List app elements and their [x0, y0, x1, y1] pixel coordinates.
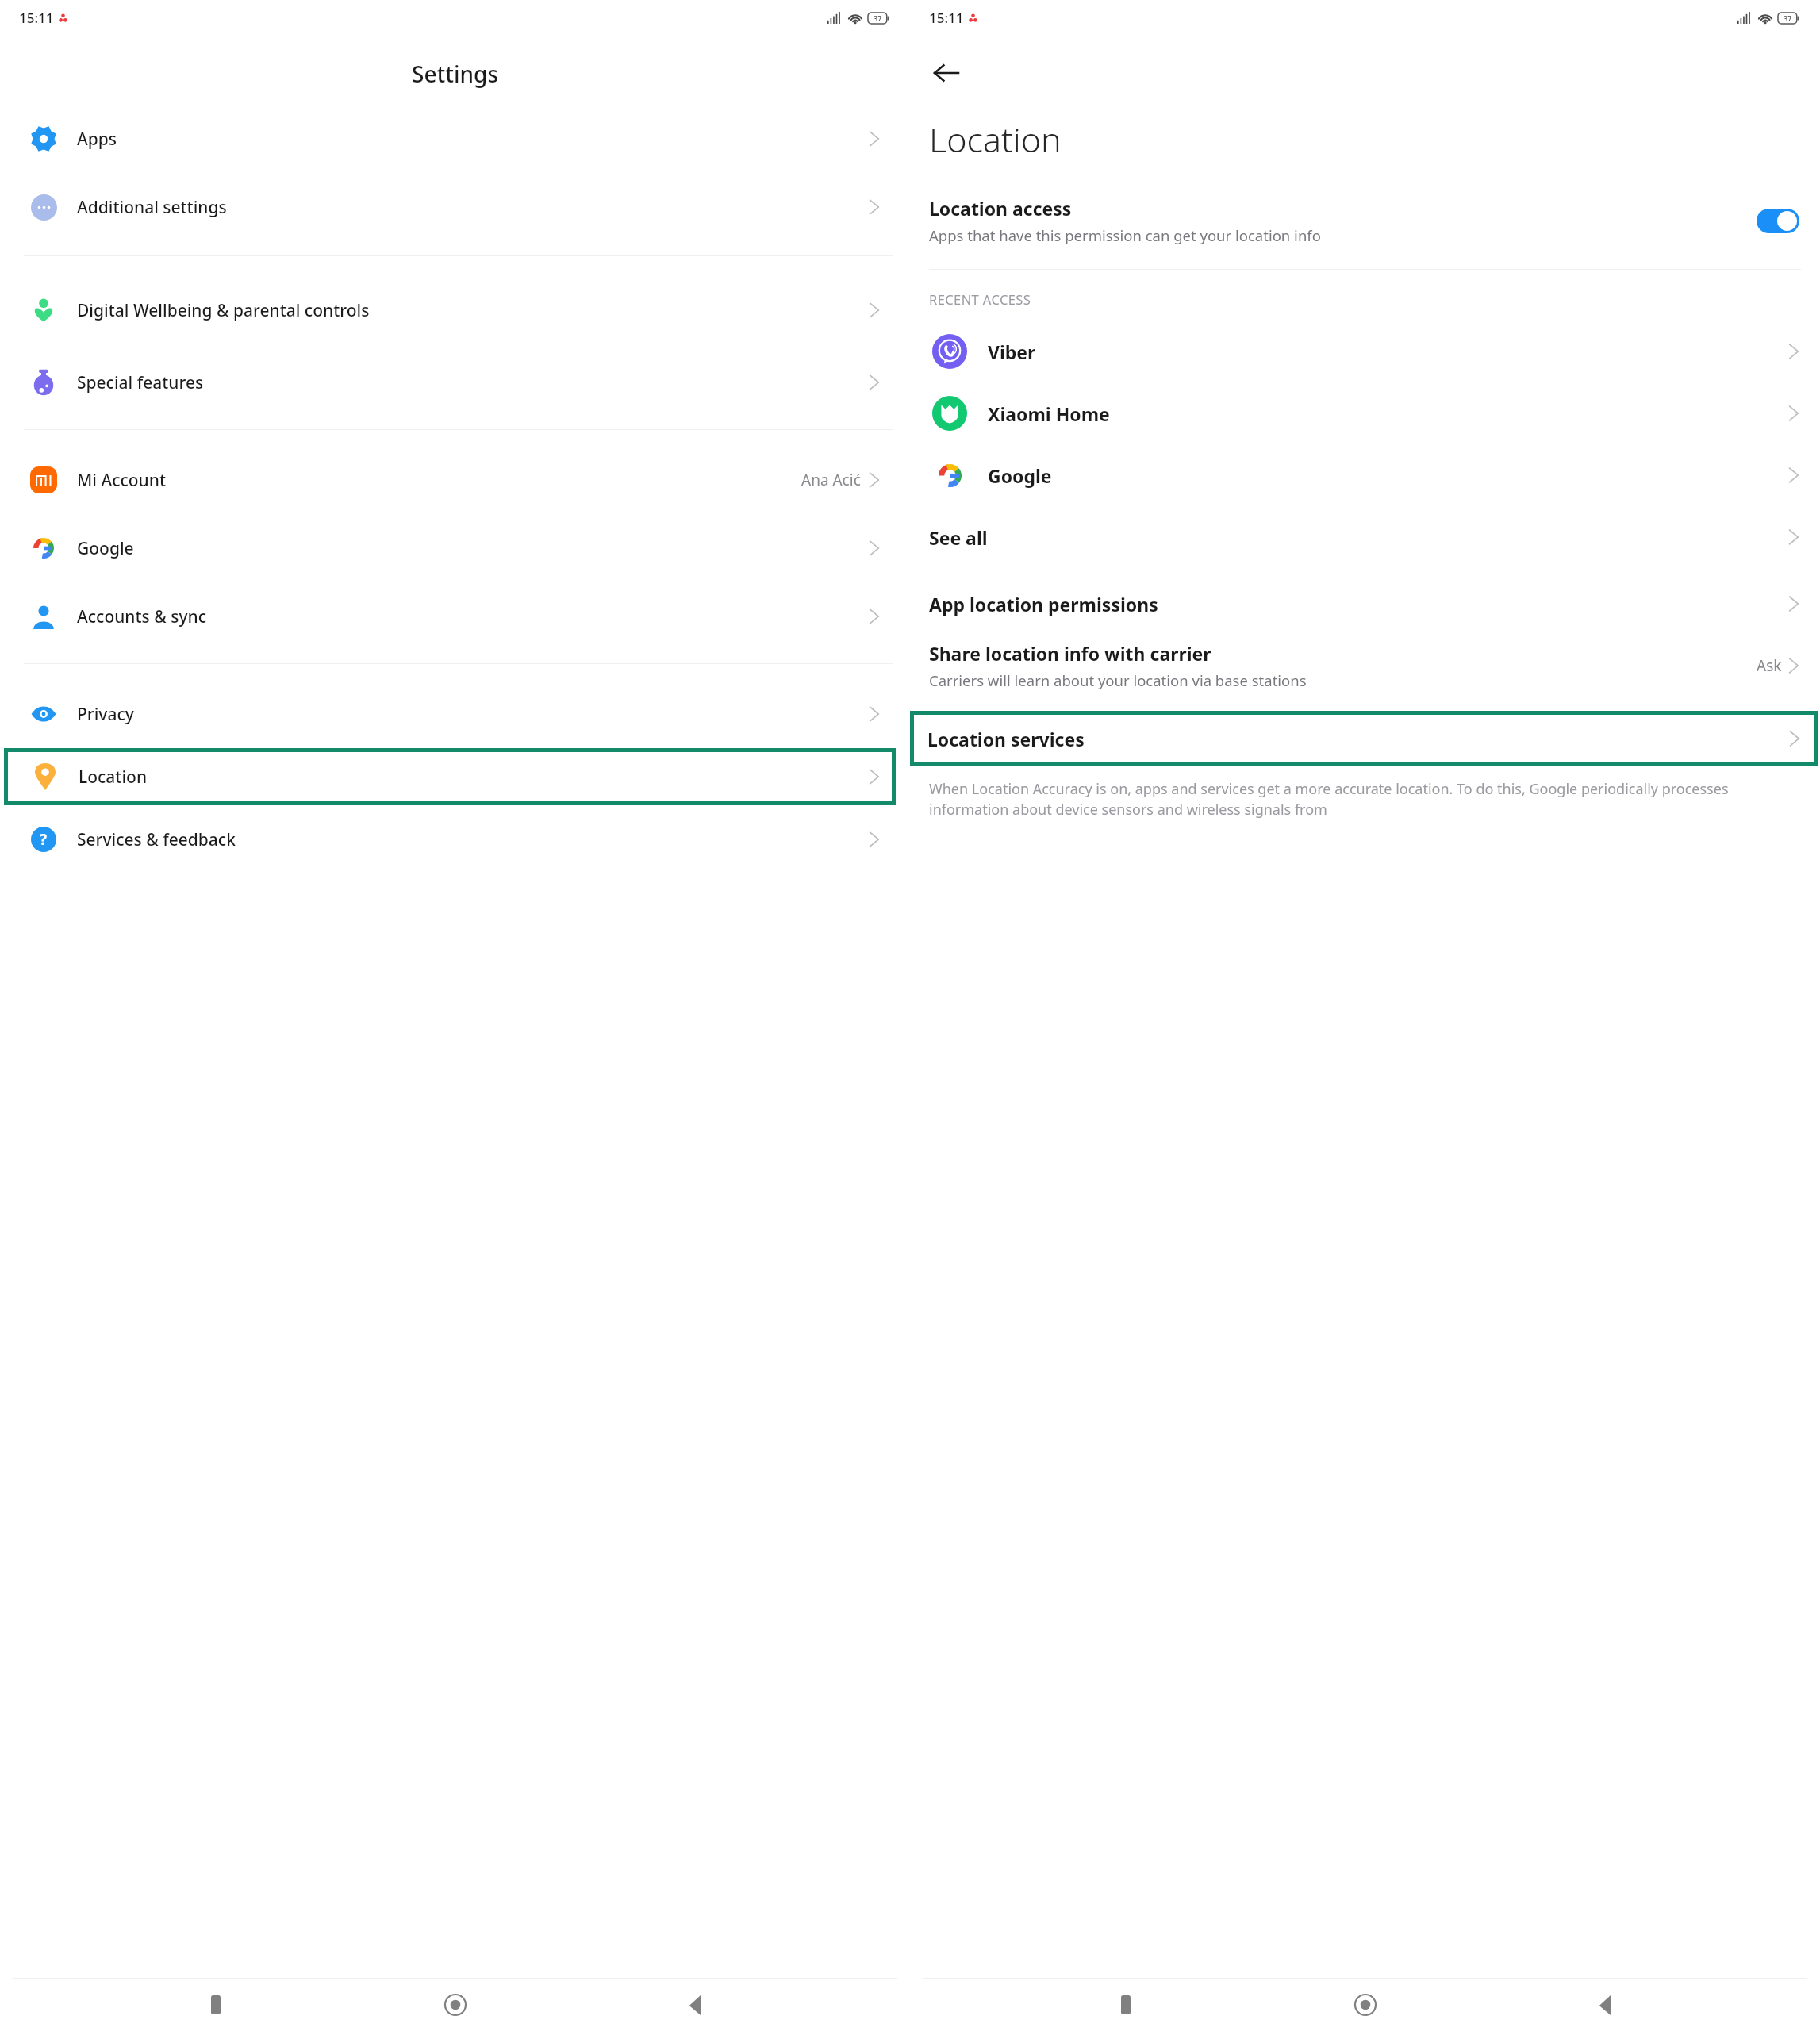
staticText: 15:11 — [929, 9, 964, 27]
staticText: Location services — [927, 727, 1085, 751]
staticText: Google — [77, 537, 862, 560]
button[interactable]: Home — [1342, 1981, 1389, 2029]
staticText: Google — [988, 463, 1052, 488]
button[interactable]: Apps — [0, 105, 910, 173]
staticText: Xiaomi Home — [988, 401, 1110, 426]
button[interactable]: Viber — [910, 321, 1820, 382]
staticText: RECENT ACCESS — [929, 290, 1031, 308]
staticText: Carriers will learn about your location … — [929, 670, 1307, 690]
button[interactable]: Mi Account — [0, 446, 910, 514]
staticText: Location access — [929, 196, 1072, 221]
button[interactable]: Xiaomi Home — [910, 382, 1820, 444]
staticText: Ana Acić — [801, 470, 861, 490]
button[interactable]: Additional settings — [0, 173, 910, 241]
staticText: 37 — [1784, 13, 1792, 23]
staticText: Settings — [412, 59, 499, 89]
button[interactable]: Share location info with carrier — [910, 641, 1820, 690]
button[interactable]: Back — [921, 48, 972, 98]
staticText: App location permissions — [929, 592, 1158, 616]
button[interactable]: Recents — [1102, 1981, 1150, 2029]
staticText: Location — [79, 766, 148, 789]
staticText: Viber — [988, 340, 1036, 364]
staticText: Apps that have this permission can get y… — [929, 225, 1321, 245]
button[interactable]: See all — [910, 506, 1820, 568]
staticText: Location — [929, 116, 1062, 163]
staticText: Mi Account — [77, 469, 795, 492]
button[interactable]: ? — [0, 805, 910, 873]
button[interactable]: Location access — [910, 196, 1820, 245]
button[interactable]: Back — [670, 1981, 718, 2029]
button[interactable]: Accounts & sync — [0, 582, 910, 651]
staticText: Services & feedback — [77, 828, 862, 851]
button[interactable]: Location services — [910, 711, 1818, 766]
staticText: Additional settings — [77, 196, 862, 219]
staticText: ? — [40, 829, 48, 850]
button[interactable]: Recents — [192, 1981, 240, 2029]
staticText: Ask — [1757, 655, 1782, 676]
staticText: Apps — [77, 128, 862, 151]
button[interactable]: Privacy — [0, 680, 910, 748]
staticText: Digital Wellbeing & parental controls — [77, 299, 862, 322]
staticText: Share location info with carrier — [929, 641, 1211, 666]
button[interactable]: Location — [4, 748, 896, 805]
staticText: Privacy — [77, 703, 862, 726]
button[interactable]: Special features — [0, 348, 910, 417]
staticText: Special features — [77, 371, 862, 394]
staticText: 37 — [874, 13, 882, 23]
button[interactable]: Google — [910, 444, 1820, 506]
staticText: See all — [929, 525, 988, 550]
button[interactable]: Digital Wellbeing & parental controls — [0, 272, 910, 348]
staticText: Accounts & sync — [77, 605, 862, 628]
button[interactable]: Home — [432, 1981, 479, 2029]
button[interactable]: Back — [1580, 1981, 1628, 2029]
button[interactable]: Location access toggle — [1757, 209, 1799, 233]
staticText: 15:11 — [19, 9, 54, 27]
staticText: When Location Accuracy is on, apps and s… — [929, 779, 1801, 819]
button[interactable]: App location permissions — [910, 573, 1820, 635]
button[interactable]: Google — [0, 514, 910, 582]
